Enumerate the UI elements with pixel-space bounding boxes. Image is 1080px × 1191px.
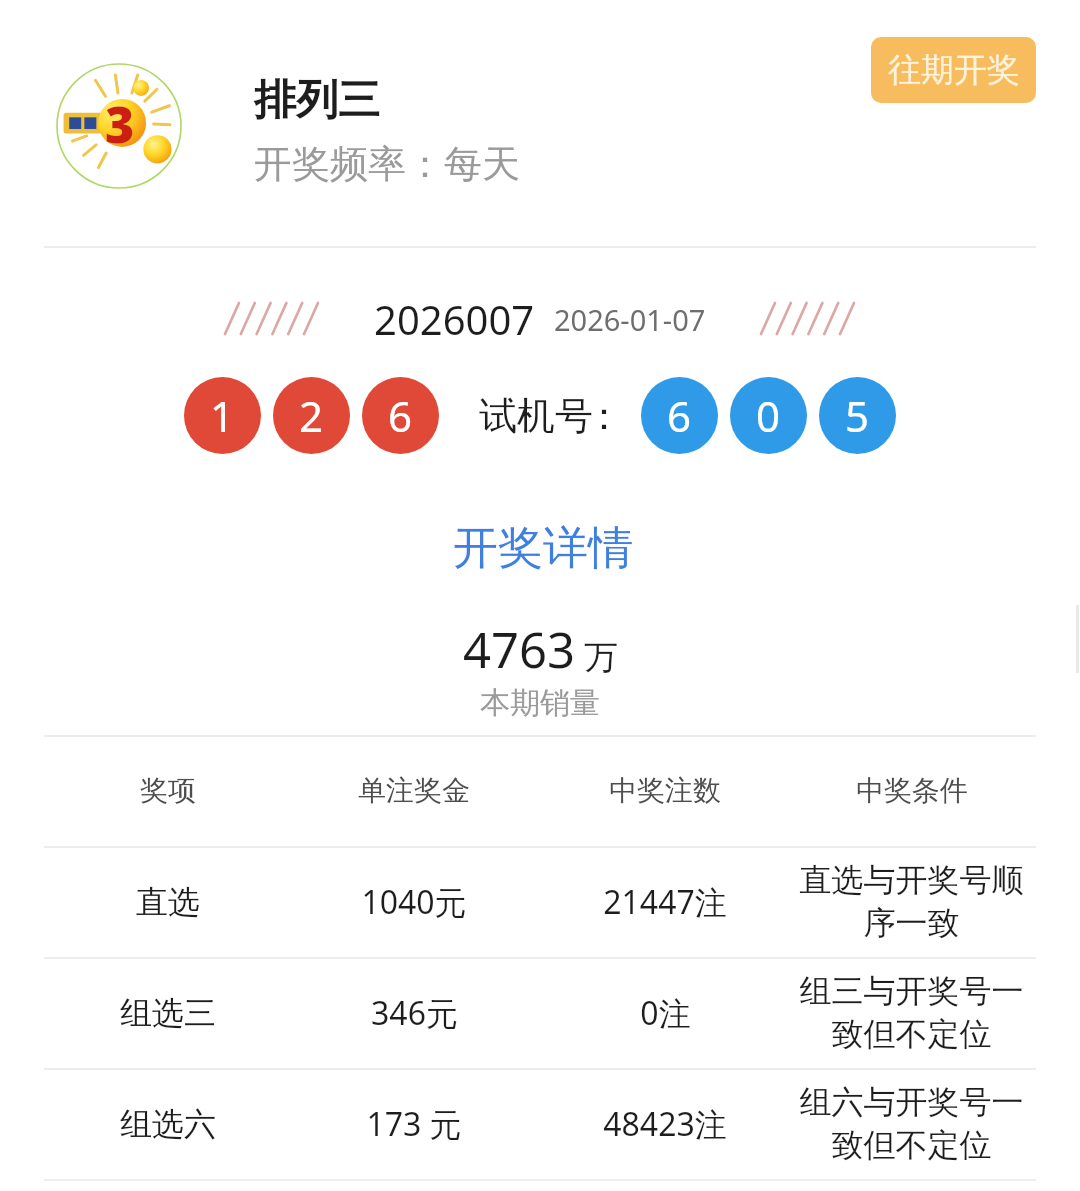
staticText: 万: [584, 636, 618, 679]
button[interactable]: 往期开奖: [871, 37, 1036, 103]
staticText: 组选六: [120, 1104, 216, 1144]
staticText: 中奖条件: [856, 773, 968, 808]
staticText: 直选: [136, 882, 200, 922]
staticText: 试机号: [479, 392, 593, 440]
staticText: 2: [299, 387, 324, 444]
button[interactable]: 排列三 彩种图标: [0, 0, 860, 246]
staticText: 2026-01-07: [554, 300, 706, 339]
staticText: 单注奖金: [358, 773, 470, 808]
staticText: 排列三: [254, 74, 380, 127]
staticText: 6: [388, 387, 413, 444]
staticText: 21447注: [603, 880, 727, 924]
staticText: 组六与开奖号一致但不定位: [789, 1082, 1034, 1165]
staticText: 4763: [463, 616, 576, 683]
staticText: 组选三: [120, 993, 216, 1033]
staticText: 48423注: [603, 1102, 727, 1146]
staticText: 中奖注数: [609, 773, 721, 808]
staticText: 0: [756, 387, 781, 444]
staticText: 组三与开奖号一致但不定位: [789, 971, 1034, 1054]
staticText: 本期销量: [480, 684, 600, 722]
staticText: ：: [585, 392, 623, 440]
staticText: 开奖详情: [453, 520, 633, 577]
staticText: 6: [667, 387, 692, 444]
staticText: 1: [210, 387, 235, 444]
staticText: 1040元: [361, 880, 467, 924]
staticText: 开奖频率：每天: [254, 140, 520, 188]
staticText: 3: [105, 90, 135, 158]
staticText: 0注: [640, 991, 691, 1035]
other: 排列三 彩种图标: [56, 63, 182, 189]
staticText: 5: [845, 387, 870, 444]
staticText: 奖项: [140, 773, 196, 808]
staticText: 346元: [371, 991, 458, 1035]
button[interactable]: 开奖详情: [438, 512, 648, 585]
staticText: 直选与开奖号顺序一致: [789, 860, 1034, 943]
staticText: 173 元: [366, 1102, 462, 1146]
staticText: 往期开奖: [888, 49, 1020, 91]
staticText: 2026007: [374, 292, 535, 346]
